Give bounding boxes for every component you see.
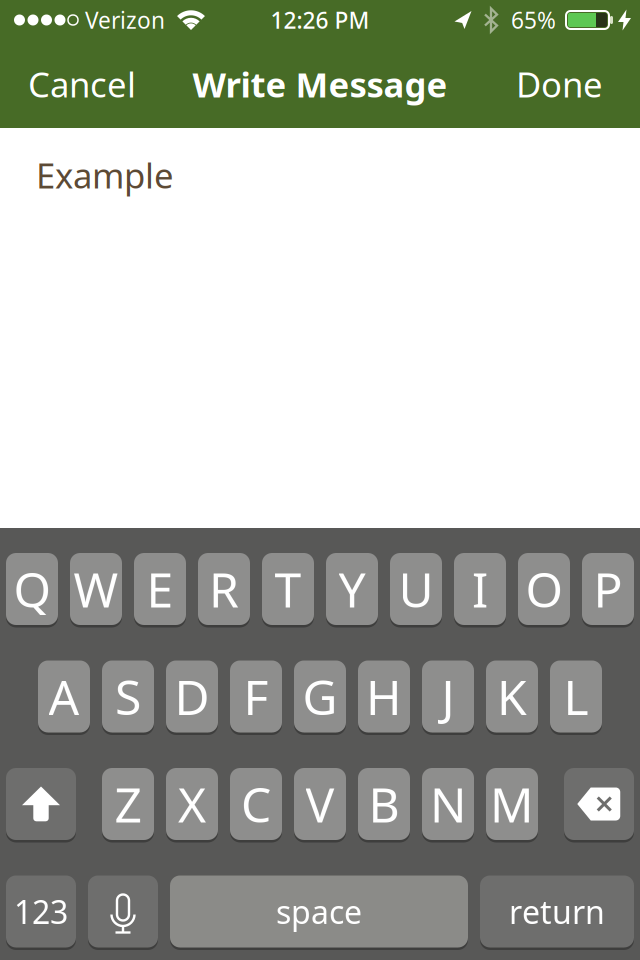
staticText: 12:26 PM — [270, 5, 369, 35]
button[interactable]: N — [422, 768, 474, 840]
button[interactable]: Z — [102, 768, 154, 840]
button[interactable]: Cancel — [0, 61, 136, 107]
staticText: W — [73, 557, 118, 621]
button[interactable]: Delete — [564, 768, 634, 840]
button[interactable]: X — [166, 768, 218, 840]
staticText: E — [146, 557, 173, 621]
button[interactable]: V — [294, 768, 346, 840]
button[interactable]: Q — [6, 553, 58, 625]
button[interactable]: K — [486, 660, 538, 732]
staticText: Write Message — [192, 61, 447, 107]
staticText: T — [274, 557, 301, 621]
button[interactable]: H — [358, 660, 410, 732]
button[interactable]: E — [134, 553, 186, 625]
button[interactable]: Shift — [6, 768, 76, 840]
staticText: L — [563, 665, 588, 728]
button[interactable]: A — [38, 660, 90, 732]
staticText: D — [174, 665, 209, 728]
button[interactable]: J — [422, 660, 474, 732]
staticText: U — [398, 557, 433, 621]
staticText: O — [525, 557, 562, 621]
button[interactable]: T — [262, 553, 314, 625]
staticText: H — [366, 665, 402, 728]
staticText: Y — [338, 557, 365, 621]
staticText: R — [209, 557, 239, 621]
staticText: space — [276, 890, 362, 933]
staticText: Done — [516, 61, 603, 107]
button[interactable]: P — [582, 553, 634, 625]
button[interactable]: S — [102, 660, 154, 732]
staticText: Verizon — [85, 5, 165, 35]
staticText: Cancel — [28, 61, 136, 107]
staticText: J — [441, 665, 454, 728]
button[interactable]: 123 — [6, 875, 76, 947]
button[interactable]: return — [480, 875, 634, 947]
staticText: Z — [114, 772, 141, 836]
staticText: C — [241, 772, 271, 836]
staticText: S — [115, 665, 141, 728]
staticText: I — [472, 557, 488, 621]
button[interactable]: B — [358, 768, 410, 840]
staticText: 65% — [511, 5, 556, 35]
button[interactable]: Done — [516, 61, 640, 107]
button[interactable]: U — [390, 553, 442, 625]
staticText: N — [430, 772, 466, 836]
button[interactable]: M — [486, 768, 538, 840]
button[interactable]: D — [166, 660, 218, 732]
button[interactable]: O — [518, 553, 570, 625]
button[interactable]: F — [230, 660, 282, 732]
staticText: return — [509, 890, 605, 933]
staticText: F — [243, 665, 268, 728]
staticText: K — [497, 665, 527, 728]
staticText: V — [305, 772, 334, 836]
button[interactable]: Y — [326, 553, 378, 625]
staticText: M — [490, 772, 534, 836]
staticText: P — [593, 557, 622, 621]
button[interactable]: Dictate — [88, 875, 158, 947]
staticText: B — [368, 772, 399, 836]
staticText: G — [302, 665, 337, 728]
staticText: Q — [13, 557, 50, 621]
button[interactable]: G — [294, 660, 346, 732]
button[interactable]: L — [550, 660, 602, 732]
staticText: A — [48, 665, 79, 728]
button[interactable]: space — [170, 875, 468, 947]
staticText: Example — [36, 152, 174, 198]
button[interactable]: R — [198, 553, 250, 625]
staticText: 123 — [14, 890, 68, 933]
button[interactable]: C — [230, 768, 282, 840]
button[interactable]: I — [454, 553, 506, 625]
button[interactable]: W — [70, 553, 122, 625]
staticText: X — [178, 772, 206, 836]
